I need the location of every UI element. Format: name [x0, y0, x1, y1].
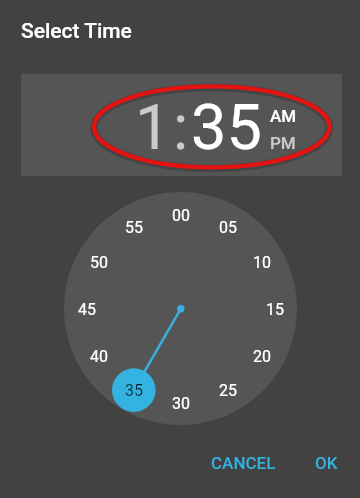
button[interactable]: 30 minutes	[159, 389, 203, 417]
staticText: 50	[90, 253, 108, 272]
button[interactable]: PM	[266, 132, 306, 154]
button[interactable]: 40 minutes	[77, 342, 121, 370]
button[interactable]: Select hour, 1	[125, 91, 171, 153]
staticText: 30	[172, 394, 190, 413]
button[interactable]: AM	[266, 105, 306, 127]
staticText: Select Time	[21, 19, 132, 44]
staticText: 10	[253, 253, 271, 272]
button[interactable]: 5 minutes	[206, 213, 250, 241]
staticText: :	[173, 91, 189, 165]
staticText: 15	[266, 300, 284, 319]
staticText: 40	[90, 347, 108, 366]
staticText: 35	[125, 381, 143, 400]
button[interactable]: OK	[304, 447, 348, 479]
button[interactable]: 10 minutes	[240, 248, 284, 276]
staticText: PM	[270, 133, 296, 153]
staticText: 20	[253, 347, 271, 366]
button[interactable]: 25 minutes	[206, 376, 250, 404]
staticText: OK	[315, 453, 338, 473]
staticText: CANCEL	[211, 453, 276, 473]
button[interactable]: Minute clock face	[64, 192, 297, 425]
staticText: 25	[219, 381, 237, 400]
button[interactable]: Select minute, 35	[191, 91, 267, 153]
button[interactable]: 50 minutes	[77, 248, 121, 276]
staticText: 45	[78, 300, 96, 319]
staticText: 00	[172, 206, 190, 225]
staticText: 55	[125, 218, 143, 237]
button[interactable]: 15 minutes	[253, 295, 297, 323]
button[interactable]: 35 minutes	[112, 376, 156, 404]
staticText: 1	[135, 91, 171, 153]
staticText: AM	[270, 106, 297, 126]
staticText: 05	[219, 218, 237, 237]
button[interactable]: CANCEL	[202, 447, 284, 479]
button[interactable]: 20 minutes	[240, 342, 284, 370]
staticText: 35	[191, 91, 262, 153]
button[interactable]: 0 minutes	[159, 201, 203, 229]
button[interactable]: 45 minutes	[65, 295, 109, 323]
button[interactable]: 55 minutes	[112, 213, 156, 241]
